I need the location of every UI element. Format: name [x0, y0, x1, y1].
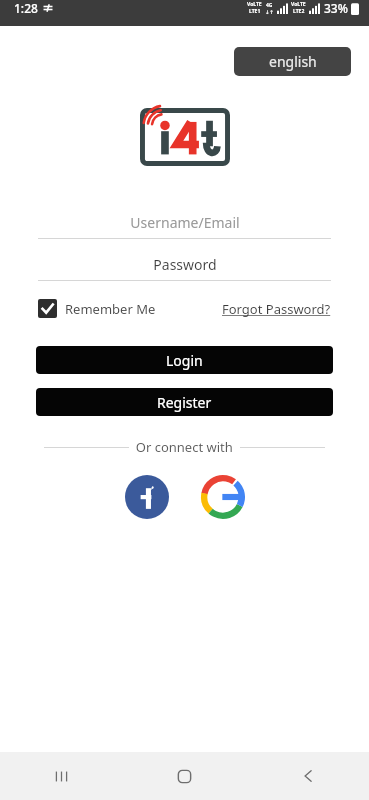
- staticText: Username/Email: [130, 213, 240, 232]
- staticText: 33%: [324, 0, 348, 16]
- button[interactable]: Login: [36, 346, 333, 374]
- button[interactable]: Home: [123, 752, 246, 800]
- staticText: Login: [166, 351, 203, 370]
- staticText: 4G: [266, 2, 273, 9]
- staticText: 1:28: [14, 0, 38, 16]
- staticText: Forgot Password?: [222, 300, 331, 318]
- staticText: LTE1: [249, 8, 261, 15]
- staticText: LTE2: [293, 8, 305, 15]
- staticText: VoLTE: [291, 1, 306, 8]
- button[interactable]: Username/Email: [38, 210, 331, 239]
- button[interactable]: Sign in with Facebook: [124, 474, 170, 520]
- button[interactable]: english: [234, 47, 351, 76]
- staticText: Password: [153, 255, 217, 274]
- staticText: english: [269, 52, 317, 71]
- staticText: Or connect with: [129, 438, 240, 456]
- button[interactable]: Forgot Password?: [222, 300, 331, 318]
- button[interactable]: Password: [38, 252, 331, 281]
- staticText: ↓↑: [265, 9, 274, 15]
- button[interactable]: Back: [246, 752, 369, 800]
- staticText: Remember Me: [65, 300, 156, 318]
- button[interactable]: Register: [36, 388, 333, 416]
- button[interactable]: Recent apps: [0, 752, 123, 800]
- staticText: VoLTE: [247, 1, 262, 8]
- staticText: Register: [157, 393, 212, 412]
- button[interactable]: Remember Me: [38, 299, 156, 318]
- button[interactable]: Sign in with Google: [200, 474, 246, 520]
